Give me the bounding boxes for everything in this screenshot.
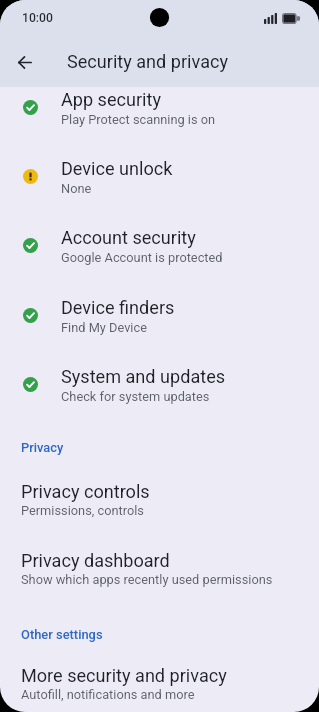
- staticText: More security and privacy: [21, 665, 227, 686]
- button[interactable]: Device finders: [0, 297, 319, 366]
- staticText: Privacy dashboard: [21, 550, 170, 571]
- button[interactable]: App security: [0, 89, 319, 158]
- staticText: Privacy controls: [21, 481, 150, 502]
- staticText: Show which apps recently used permission…: [21, 572, 273, 587]
- staticText: Security and privacy: [67, 51, 229, 72]
- button[interactable]: More security and privacy: [0, 653, 319, 712]
- staticText: System and updates: [61, 366, 226, 387]
- staticText: Check for system updates: [61, 389, 210, 404]
- staticText: Other settings: [21, 627, 103, 642]
- staticText: Autofill, notifications and more: [21, 687, 195, 702]
- staticText: Find My Device: [61, 320, 147, 335]
- staticText: Privacy: [21, 440, 64, 455]
- staticText: 10:00: [22, 11, 53, 25]
- staticText: Google Account is protected: [61, 250, 223, 265]
- staticText: App security: [61, 89, 162, 110]
- button[interactable]: Account security: [0, 227, 319, 296]
- staticText: None: [61, 181, 92, 196]
- staticText: Device unlock: [61, 158, 173, 179]
- button[interactable]: Back: [5, 42, 45, 82]
- button[interactable]: System and updates: [0, 366, 319, 435]
- staticText: Device finders: [61, 297, 175, 318]
- staticText: Account security: [61, 227, 196, 248]
- button[interactable]: Device unlock: [0, 158, 319, 227]
- staticText: Permissions, controls: [21, 503, 144, 518]
- button[interactable]: Privacy dashboard: [0, 538, 319, 607]
- button[interactable]: Privacy controls: [0, 469, 319, 538]
- staticText: Play Protect scanning is on: [61, 112, 216, 127]
